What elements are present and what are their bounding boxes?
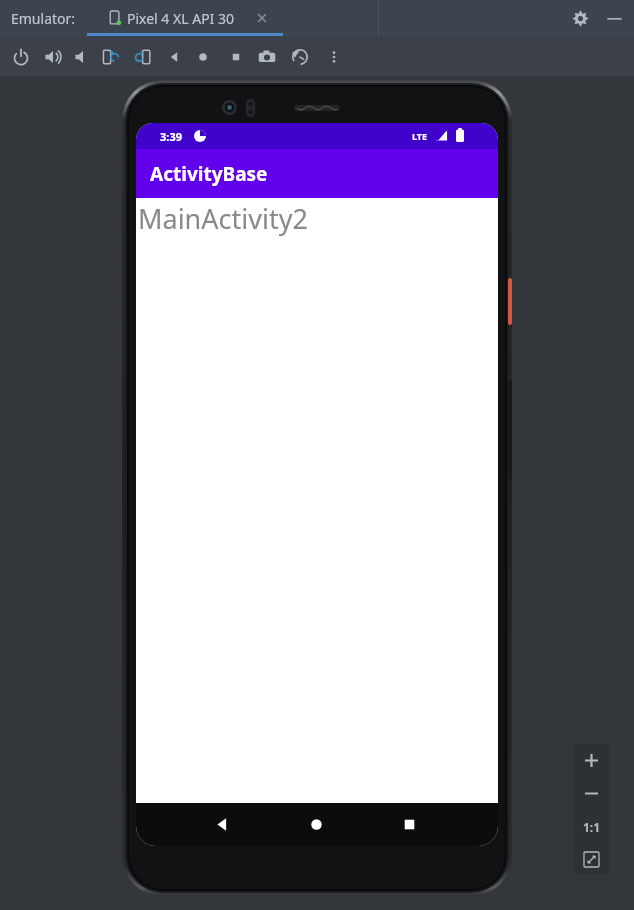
staticText: Emulator: xyxy=(11,9,76,28)
button[interactable]: Back xyxy=(215,817,230,832)
button[interactable]: Volume down xyxy=(72,46,93,67)
button[interactable]: Rotate left xyxy=(100,46,121,67)
button[interactable]: Back xyxy=(164,46,185,67)
button[interactable]: Zoom in xyxy=(574,744,609,777)
staticText: LTE xyxy=(412,130,428,142)
button[interactable]: Zoom out xyxy=(574,777,609,810)
button[interactable]: Home xyxy=(309,817,324,832)
staticText: MainActivity2 xyxy=(138,200,308,237)
button[interactable]: Take screenshot xyxy=(256,46,277,67)
button[interactable]: Fit to screen xyxy=(574,843,609,875)
button[interactable]: Power button xyxy=(508,278,512,325)
button[interactable]: Pixel 4 XL API 30 xyxy=(87,0,283,36)
button[interactable]: More options xyxy=(323,46,344,67)
button[interactable]: Volume up xyxy=(42,46,63,67)
button[interactable]: Rotate right xyxy=(132,46,153,67)
button[interactable]: 1:1 xyxy=(574,810,609,843)
button[interactable]: Overview xyxy=(225,46,246,67)
button[interactable]: Minimize xyxy=(606,10,623,27)
button[interactable]: Settings xyxy=(572,10,589,27)
button[interactable]: ActivityBase xyxy=(136,149,498,198)
button[interactable]: Record screen xyxy=(289,46,310,67)
staticText: Pixel 4 XL API 30 xyxy=(127,9,235,28)
staticText: 1:1 xyxy=(583,819,601,835)
staticText: 3:39 xyxy=(160,129,182,144)
staticText: ActivityBase xyxy=(150,161,268,187)
button[interactable]: Power xyxy=(10,46,31,67)
button[interactable]: Close tab xyxy=(255,11,269,25)
button[interactable]: Recent apps xyxy=(402,817,417,832)
button[interactable]: Home xyxy=(192,46,213,67)
